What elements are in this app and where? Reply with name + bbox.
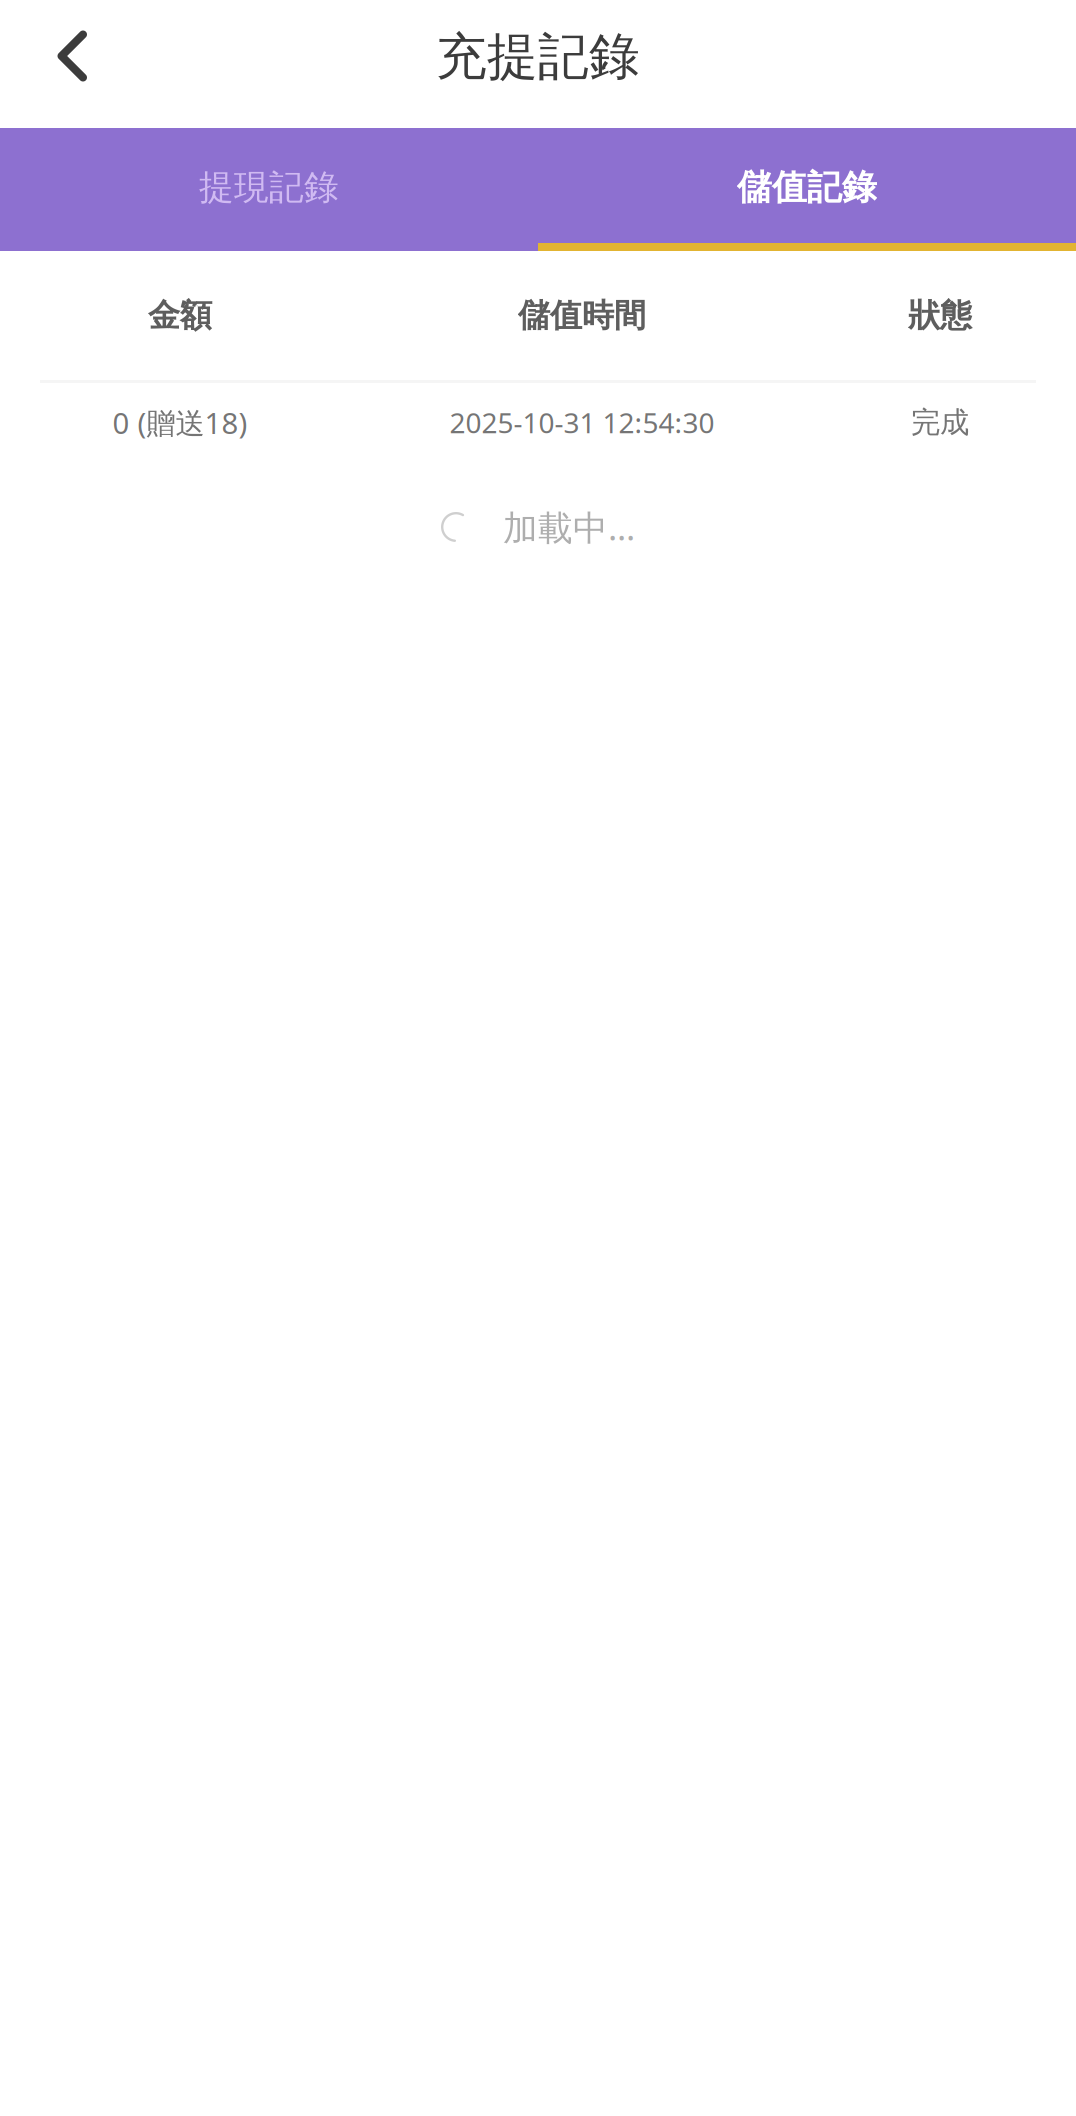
button[interactable]: Back — [16, 0, 128, 112]
button[interactable]: 提現記錄 — [0, 128, 538, 251]
staticText: 2025-10-31 12:54:30 — [449, 404, 714, 441]
button[interactable]: 儲值記錄 — [538, 128, 1076, 251]
staticText: 提現記錄 — [199, 166, 339, 209]
staticText: 儲值時間 — [518, 296, 646, 335]
staticText: 完成 — [911, 404, 969, 440]
staticText: 充提記錄 — [436, 26, 640, 88]
staticText: 狀態 — [908, 296, 972, 335]
staticText: 儲值記錄 — [737, 166, 877, 209]
staticText: 0 (贈送18) — [112, 403, 247, 442]
staticText: 金額 — [148, 296, 212, 335]
staticText: 加載中... — [503, 504, 635, 550]
